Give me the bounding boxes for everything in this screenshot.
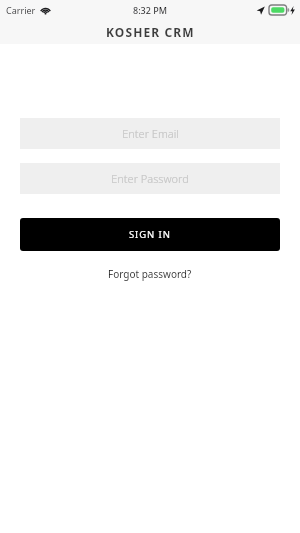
- staticText: Enter Email: [122, 126, 179, 141]
- staticText: KOSHER CRM: [106, 24, 195, 40]
- button[interactable]: Enter Password: [20, 163, 280, 194]
- staticText: 8:32 PM: [133, 4, 167, 16]
- button[interactable]: SIGN IN: [20, 218, 280, 251]
- button[interactable]: Forgot password?: [98, 263, 202, 285]
- staticText: Carrier: [6, 4, 36, 16]
- button[interactable]: Enter Email: [20, 118, 280, 149]
- staticText: Enter Password: [111, 171, 189, 186]
- staticText: SIGN IN: [129, 228, 171, 241]
- staticText: Forgot password?: [108, 267, 192, 281]
